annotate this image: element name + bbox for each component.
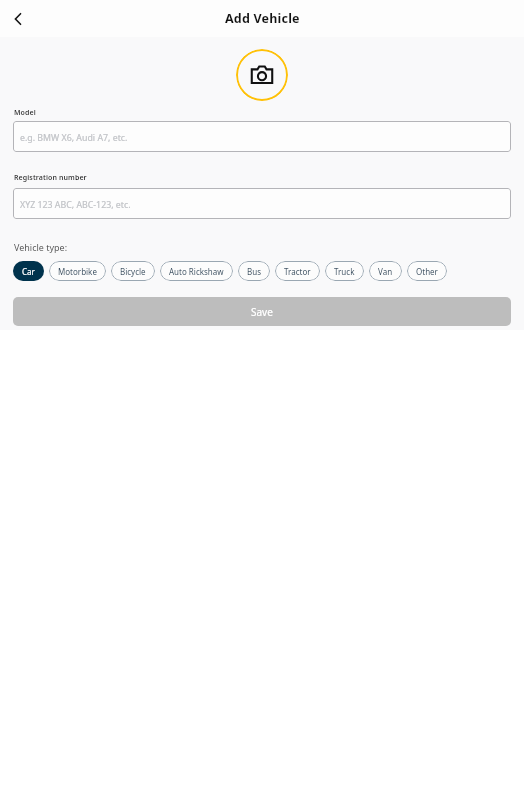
button[interactable]: Add vehicle photo — [236, 49, 288, 101]
staticText: Truck — [334, 266, 355, 277]
staticText: Registration number — [14, 173, 87, 183]
button[interactable]: Bicycle — [111, 261, 155, 281]
button[interactable]: Truck — [325, 261, 364, 281]
staticText: e.g. BMW X6, Audi A7, etc. — [20, 132, 128, 144]
staticText: Tractor — [284, 266, 311, 277]
button[interactable]: Motorbike — [49, 261, 106, 281]
staticText: XYZ 123 ABC, ABC-123, etc. — [20, 199, 131, 211]
button[interactable]: Van — [369, 261, 402, 281]
staticText: Other — [416, 266, 438, 277]
staticText: Motorbike — [58, 266, 97, 277]
button[interactable]: Bus — [238, 261, 270, 281]
staticText: Bicycle — [120, 266, 146, 277]
staticText: Model — [14, 108, 36, 118]
button[interactable]: Save — [13, 297, 511, 326]
staticText: Auto Rickshaw — [169, 266, 224, 277]
button[interactable]: XYZ 123 ABC, ABC-123, etc. — [13, 188, 511, 219]
staticText: Car — [22, 266, 35, 277]
button[interactable]: Back — [5, 6, 31, 32]
staticText: Bus — [247, 266, 261, 277]
staticText: Van — [378, 266, 393, 277]
staticText: Save — [251, 305, 273, 319]
button[interactable]: e.g. BMW X6, Audi A7, etc. — [13, 121, 511, 152]
staticText: Add Vehicle — [225, 10, 300, 27]
button[interactable]: Other — [407, 261, 447, 281]
staticText: Vehicle type: — [14, 241, 68, 253]
button[interactable]: Auto Rickshaw — [160, 261, 233, 281]
button[interactable]: Car — [13, 261, 44, 281]
button[interactable]: Tractor — [275, 261, 320, 281]
